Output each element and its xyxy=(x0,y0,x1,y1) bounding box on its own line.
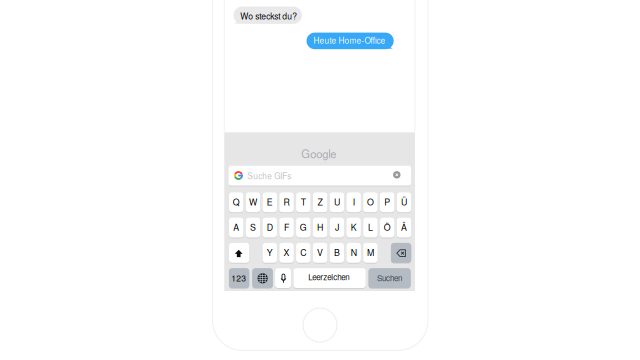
staticText: Ä xyxy=(401,221,407,233)
staticText: O xyxy=(367,195,374,208)
staticText: Google xyxy=(301,145,336,161)
button[interactable]: U xyxy=(330,192,344,212)
staticText: Heute Home-Office xyxy=(313,34,385,46)
staticText: S xyxy=(250,221,256,233)
staticText: V xyxy=(317,246,323,258)
staticText: U xyxy=(334,195,340,208)
staticText: L xyxy=(368,221,373,233)
staticText: Z xyxy=(318,195,323,208)
button[interactable]: Suchen xyxy=(368,268,411,288)
button[interactable]: V xyxy=(313,243,327,263)
button[interactable]: E xyxy=(262,192,277,212)
button[interactable]: Ä xyxy=(397,218,411,238)
staticText: Leerzeichen xyxy=(308,271,349,282)
staticText: X xyxy=(283,246,289,258)
staticText: D xyxy=(267,221,273,233)
button[interactable]: I xyxy=(346,192,361,212)
button[interactable]: N xyxy=(346,243,361,263)
staticText: Y xyxy=(267,246,273,258)
staticText: J xyxy=(335,221,339,233)
staticText: W xyxy=(249,195,257,208)
button[interactable]: B xyxy=(330,243,344,263)
button[interactable]: H xyxy=(313,218,327,238)
button[interactable]: R xyxy=(279,192,294,212)
button[interactable]: Q xyxy=(229,192,243,212)
staticText: Q xyxy=(233,195,240,208)
button[interactable]: G xyxy=(296,218,311,238)
staticText: Ü xyxy=(401,195,407,208)
staticText: Suche GIFs xyxy=(247,170,291,181)
button[interactable]: K xyxy=(346,218,361,238)
button[interactable]: D xyxy=(262,218,277,238)
staticText: C xyxy=(300,246,306,258)
button[interactable]: M xyxy=(363,243,378,263)
button[interactable]: C xyxy=(296,243,311,263)
staticText: I xyxy=(353,195,355,208)
button[interactable]: Dictate xyxy=(275,268,291,288)
button[interactable]: L xyxy=(363,218,378,238)
staticText: R xyxy=(283,195,289,208)
staticText: G xyxy=(300,221,307,233)
staticText: E xyxy=(267,195,273,208)
button[interactable]: S xyxy=(246,218,260,238)
button[interactable]: Clear search xyxy=(393,171,402,180)
button[interactable]: Switch keyboard xyxy=(252,268,273,288)
staticText: Ö xyxy=(384,221,391,233)
button[interactable]: T xyxy=(296,192,311,212)
button[interactable]: Leerzeichen xyxy=(293,268,366,288)
button[interactable]: P xyxy=(380,192,394,212)
staticText: A xyxy=(233,221,239,233)
staticText: 123 xyxy=(231,272,246,284)
button[interactable]: Ü xyxy=(397,192,411,212)
button[interactable]: Shift xyxy=(229,243,249,263)
button[interactable]: J xyxy=(330,218,344,238)
staticText: M xyxy=(367,246,374,258)
button[interactable]: Ö xyxy=(380,218,394,238)
staticText: P xyxy=(384,195,390,208)
button[interactable]: A xyxy=(229,218,243,238)
button[interactable]: W xyxy=(246,192,260,212)
button[interactable]: X xyxy=(279,243,294,263)
staticText: T xyxy=(301,195,306,208)
staticText: H xyxy=(317,221,323,233)
staticText: F xyxy=(284,221,289,233)
staticText: B xyxy=(334,246,340,258)
button[interactable]: 123 xyxy=(229,268,249,288)
button[interactable]: O xyxy=(363,192,378,212)
button[interactable]: F xyxy=(279,218,294,238)
staticText: N xyxy=(351,246,357,258)
button[interactable]: Z xyxy=(313,192,327,212)
button[interactable]: Y xyxy=(262,243,277,263)
staticText: Wo steckst du? xyxy=(240,10,297,22)
button[interactable]: Delete xyxy=(391,243,411,263)
staticText: Suchen xyxy=(377,272,402,283)
staticText: K xyxy=(351,221,357,233)
